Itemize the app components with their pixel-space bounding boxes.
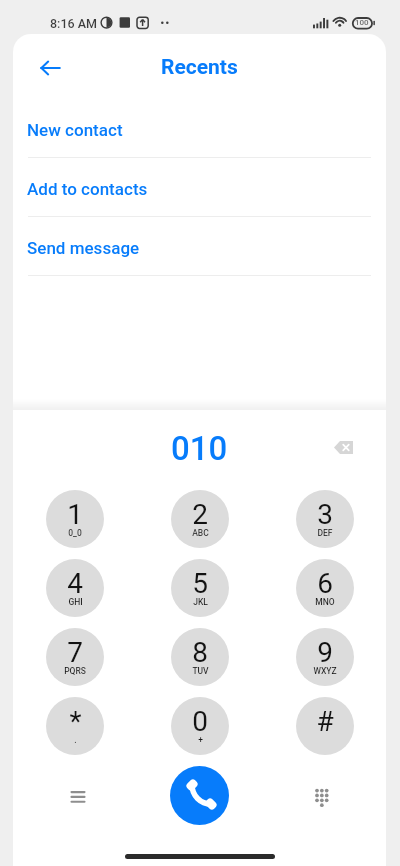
staticText: 7 <box>67 636 83 669</box>
staticText: Recents <box>161 55 238 80</box>
staticText: * <box>69 705 82 738</box>
staticText: ABC <box>192 528 209 538</box>
staticText: 2 <box>192 498 208 531</box>
staticText: MNO <box>315 597 335 607</box>
staticText: New contact <box>27 120 123 140</box>
staticText: 6 <box>317 567 333 600</box>
staticText: # <box>316 705 334 738</box>
staticText: GHI <box>68 597 83 607</box>
button[interactable]: 5 <box>171 559 229 617</box>
staticText: WXYZ <box>313 666 337 676</box>
button[interactable]: Backspace <box>322 426 364 468</box>
staticText: PQRS <box>64 666 86 676</box>
button[interactable]: 1 <box>46 490 104 548</box>
staticText: . <box>74 735 77 745</box>
staticText: 100 <box>355 18 369 27</box>
button[interactable]: 7 <box>46 628 104 686</box>
button[interactable]: Menu <box>56 774 100 818</box>
button[interactable]: * <box>46 697 104 755</box>
staticText: 8:16 AM <box>50 16 98 31</box>
button[interactable]: # <box>296 697 354 755</box>
staticText: Add to contacts <box>27 179 148 199</box>
staticText: 010 <box>171 429 228 468</box>
button[interactable]: Call <box>170 766 229 825</box>
button[interactable]: 8 <box>171 628 229 686</box>
staticText: 3 <box>317 498 333 531</box>
staticText: 0_0 <box>68 528 82 538</box>
button[interactable]: 6 <box>296 559 354 617</box>
button[interactable]: 9 <box>296 628 354 686</box>
button[interactable]: Add to contacts <box>13 158 386 217</box>
staticText: 5 <box>192 567 208 600</box>
button[interactable]: Send message <box>13 217 386 276</box>
button[interactable]: 4 <box>46 559 104 617</box>
staticText: 8 <box>192 636 208 669</box>
staticText: TUV <box>192 666 209 676</box>
staticText: + <box>198 735 203 745</box>
staticText: 1 <box>67 498 83 531</box>
staticText: JKL <box>193 597 208 607</box>
button[interactable]: 3 <box>296 490 354 548</box>
button[interactable]: Dialpad <box>300 774 344 818</box>
button[interactable]: 2 <box>171 490 229 548</box>
button[interactable]: 0 <box>171 697 229 755</box>
staticText: 4 <box>67 567 83 600</box>
button[interactable]: New contact <box>13 99 386 158</box>
staticText: DEF <box>317 528 333 538</box>
staticText: Send message <box>27 238 140 258</box>
staticText: 9 <box>317 636 333 669</box>
staticText: 0 <box>192 705 208 738</box>
button[interactable]: Back <box>28 46 72 90</box>
